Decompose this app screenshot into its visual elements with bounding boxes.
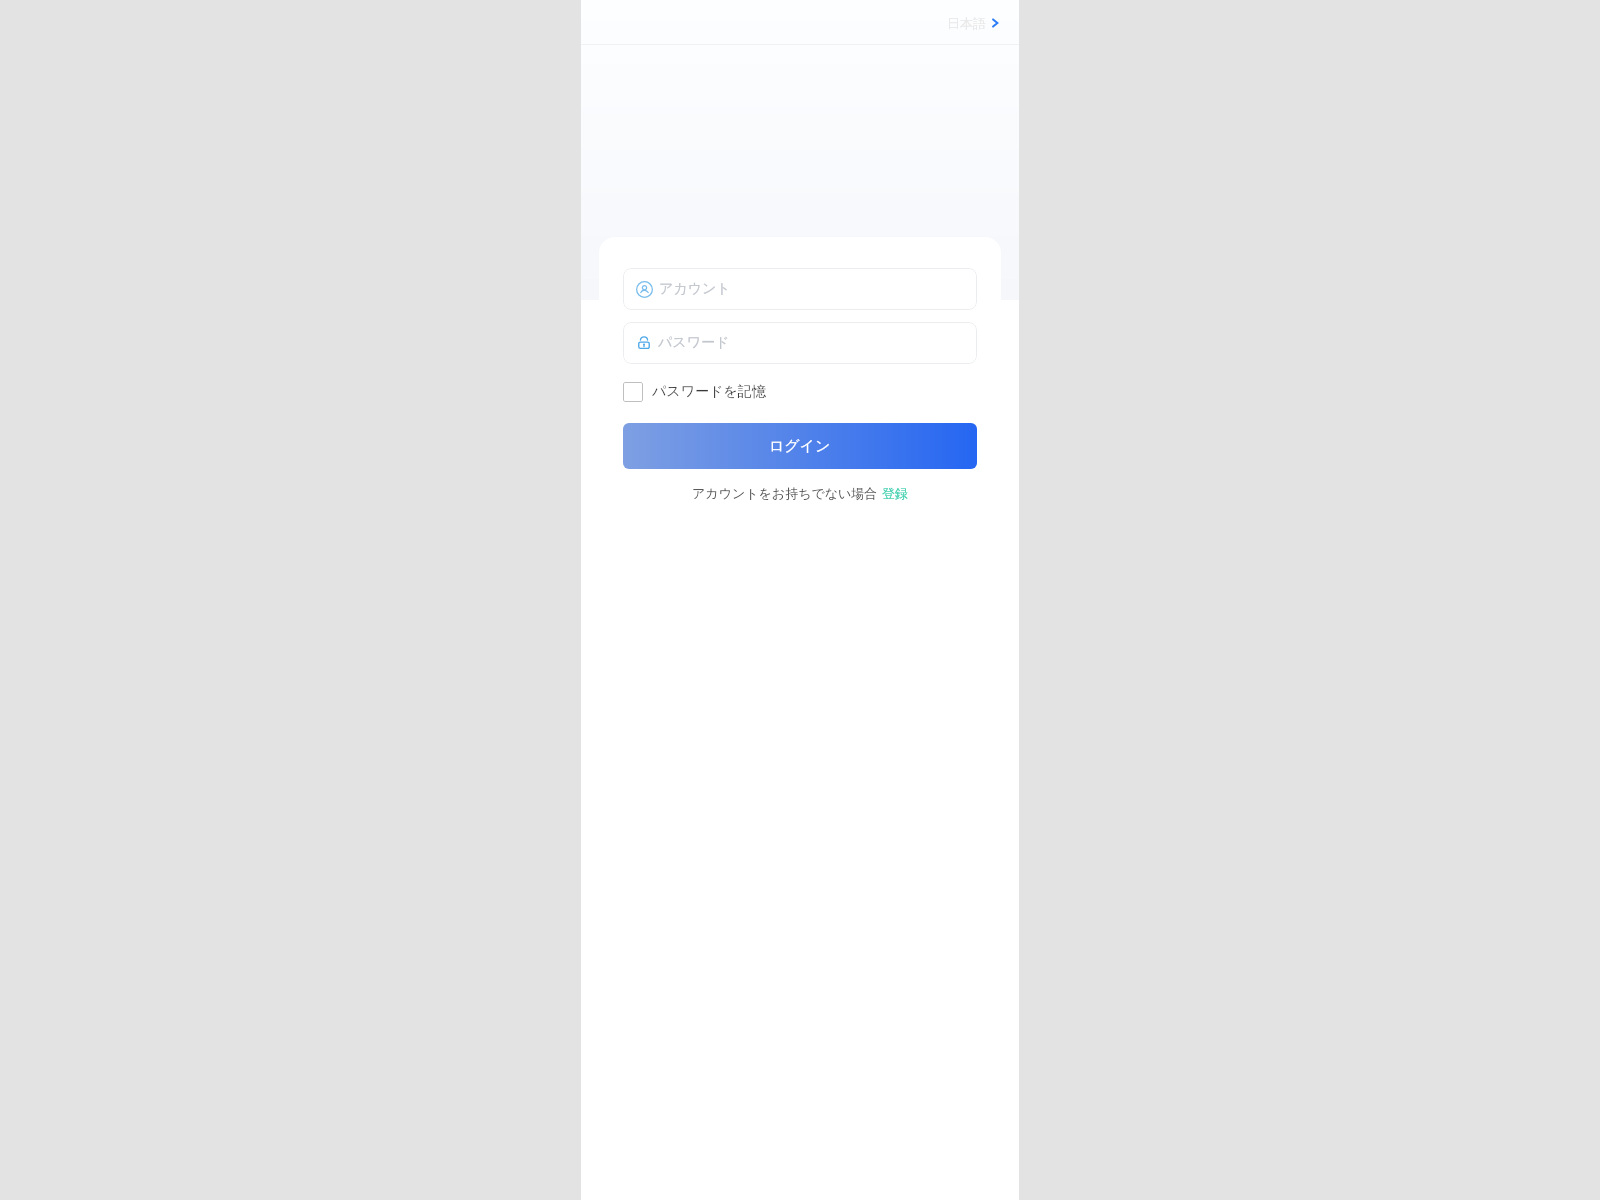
staticText: アカウントをお持ちでない場合 — [692, 485, 878, 501]
button[interactable]: パスワードを記憶 — [623, 378, 766, 406]
staticText: アカウント — [659, 280, 731, 298]
other: Password — [636, 335, 652, 351]
staticText: 日本語 — [947, 15, 986, 31]
button[interactable]: Password — [623, 322, 977, 364]
staticText: 登録 — [882, 485, 908, 501]
button[interactable]: 登録 — [882, 485, 908, 501]
button[interactable]: 日本語 — [943, 11, 1005, 35]
staticText: ログイン — [769, 437, 831, 456]
other: Account — [636, 281, 653, 298]
button[interactable]: ログイン — [623, 423, 977, 469]
button[interactable]: Account — [623, 268, 977, 310]
staticText: パスワードを記憶 — [652, 383, 766, 401]
staticText: パスワード — [658, 334, 730, 352]
